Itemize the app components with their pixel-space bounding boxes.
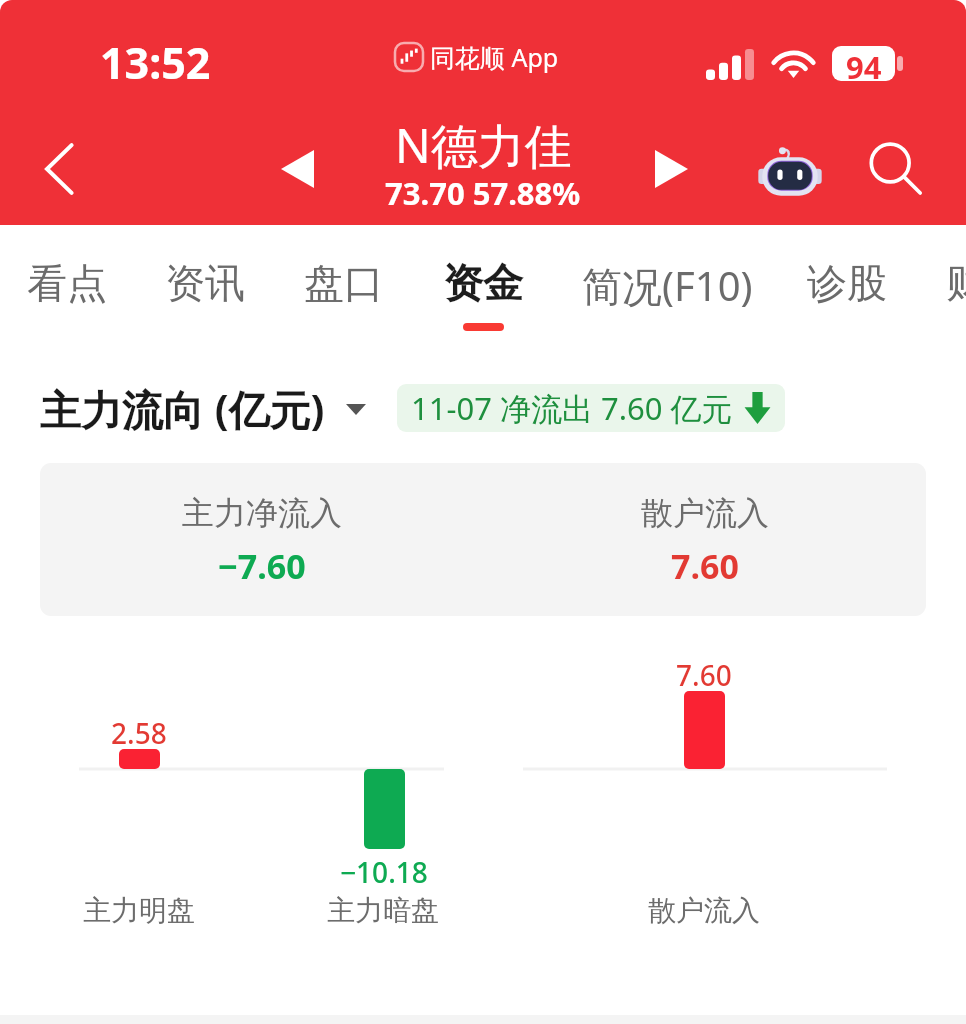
- button[interactable]: 主力流向 (亿元): [34, 380, 374, 436]
- staticText: 7.60: [671, 543, 739, 589]
- staticText: 7.60: [676, 656, 732, 694]
- button[interactable]: 盘口: [290, 250, 398, 331]
- staticText: 散户流入: [641, 493, 769, 533]
- button[interactable]: 诊股: [793, 250, 901, 331]
- staticText: 94: [846, 46, 882, 81]
- staticText: −7.60: [218, 543, 306, 589]
- button[interactable]: 主力净流入: [40, 463, 926, 616]
- button[interactable]: 看点: [13, 250, 121, 331]
- staticText: −10.18: [340, 853, 428, 891]
- button[interactable]: 资金: [429, 250, 537, 339]
- staticText: 13:52: [100, 33, 211, 92]
- button[interactable]: 财: [932, 250, 966, 331]
- staticText: 主力净流入: [182, 493, 342, 533]
- staticText: 资金: [443, 258, 523, 308]
- staticText: 资讯: [165, 258, 245, 308]
- staticText: 财: [946, 258, 966, 308]
- staticText: 11-07 净流出 7.60 亿元: [411, 387, 733, 429]
- button[interactable]: 资讯: [151, 250, 259, 331]
- staticText: 散户流入: [648, 893, 760, 928]
- staticText: 主力暗盘: [327, 893, 439, 928]
- staticText: 简况(F10): [582, 258, 753, 313]
- button[interactable]: N德力佳: [330, 113, 636, 219]
- staticText: 主力流向 (亿元): [40, 381, 325, 437]
- staticText: 同花顺 App: [430, 40, 559, 74]
- staticText: 盘口: [304, 258, 384, 308]
- button[interactable]: Search: [858, 132, 932, 206]
- staticText: 诊股: [807, 258, 887, 308]
- button[interactable]: AI assistant: [754, 136, 826, 208]
- staticText: 2.58: [111, 714, 167, 752]
- staticText: N德力佳: [395, 113, 572, 177]
- button[interactable]: 11-07 净流出 7.60 亿元: [397, 384, 785, 432]
- button[interactable]: 简况(F10): [568, 250, 767, 336]
- staticText: 主力明盘: [83, 893, 195, 928]
- staticText: 看点: [27, 258, 107, 308]
- staticText: 73.70 57.88%: [385, 172, 581, 214]
- button[interactable]: Next stock: [638, 136, 704, 202]
- button[interactable]: Back: [22, 132, 96, 206]
- button[interactable]: Previous stock: [264, 136, 330, 202]
